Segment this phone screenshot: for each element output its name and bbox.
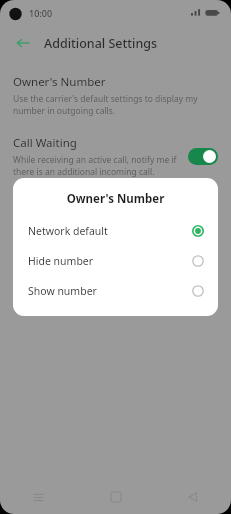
staticText: Call Waiting — [13, 135, 77, 151]
button[interactable]: Owner's Number — [0, 72, 231, 119]
button[interactable]: Show number — [13, 276, 218, 306]
staticText: 10:00 — [29, 7, 53, 19]
staticText: Show number — [28, 284, 192, 298]
button[interactable]: Network default — [13, 216, 218, 246]
button[interactable]: Call Waiting toggle — [188, 148, 218, 165]
staticText: Use the carrier's default settings to di… — [13, 93, 218, 117]
staticText: Owner's Number — [13, 191, 218, 207]
button[interactable]: Call Waiting — [0, 133, 231, 180]
staticText: While receiving an active call, notify m… — [13, 154, 180, 178]
staticText: Network default — [28, 224, 192, 238]
button[interactable]: Recent apps — [0, 480, 77, 514]
button[interactable]: Back — [154, 480, 231, 514]
button[interactable]: Back — [12, 32, 34, 54]
button[interactable]: Hide number — [13, 246, 218, 276]
staticText: Owner's Number — [13, 74, 106, 90]
staticText: Additional Settings — [44, 35, 158, 52]
staticText: Hide number — [28, 254, 192, 268]
